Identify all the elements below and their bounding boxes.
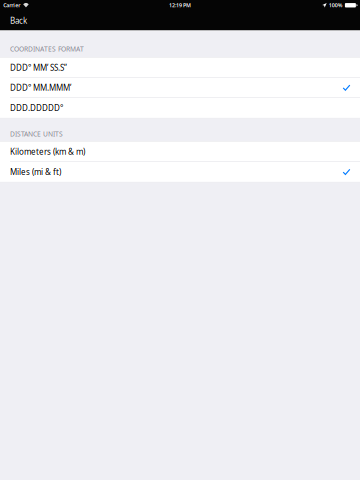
button[interactable]: DDD° MM’ SS.S” xyxy=(0,58,360,78)
staticText: Back xyxy=(10,15,27,26)
staticText: COORDINATES FORMAT xyxy=(10,44,84,53)
staticText: Miles (mi & ft) xyxy=(10,167,61,177)
staticText: 12:19 PM xyxy=(169,2,191,9)
staticText: DDD° MM.MMM’ xyxy=(10,82,71,93)
staticText: Carrier xyxy=(3,2,20,9)
button[interactable]: DDD.DDDDD° xyxy=(0,98,360,118)
button[interactable]: Miles (mi & ft) xyxy=(0,162,360,182)
staticText: DDD° MM’ SS.S” xyxy=(10,62,67,73)
staticText: DDD.DDDDD° xyxy=(10,103,63,113)
staticText: 100% xyxy=(329,2,343,9)
button[interactable]: Back xyxy=(0,11,35,31)
button[interactable]: DDD° MM.MMM’ xyxy=(0,78,360,98)
button[interactable]: Kilometers (km & m) xyxy=(0,142,360,162)
staticText: Kilometers (km & m) xyxy=(10,146,85,157)
staticText: DISTANCE UNITS xyxy=(10,129,63,138)
